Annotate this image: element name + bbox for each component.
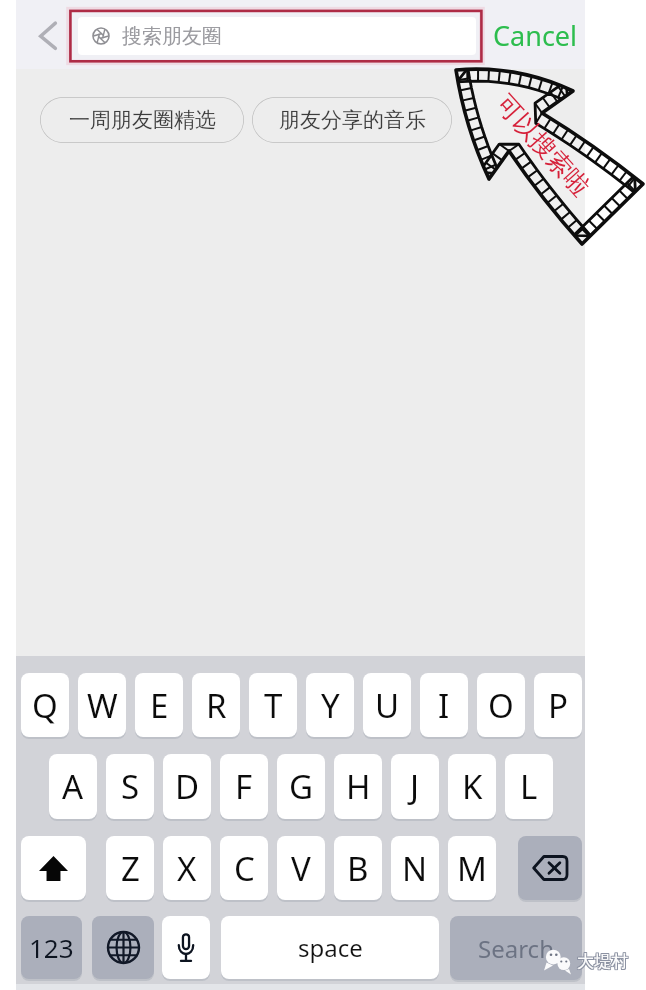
button[interactable]: T [249, 673, 297, 737]
staticText: space [298, 931, 363, 964]
button[interactable]: B [334, 836, 382, 900]
button[interactable]: G [277, 754, 325, 819]
staticText: U [375, 683, 400, 728]
staticText: 大堤村 [576, 952, 627, 973]
staticText: 朋友分享的音乐 [279, 107, 426, 133]
staticText: E [150, 683, 169, 728]
staticText: M [457, 846, 487, 891]
button[interactable]: I [420, 673, 468, 737]
staticText: V [291, 846, 311, 891]
button[interactable]: Z [106, 836, 154, 900]
button[interactable]: 搜索朋友圈 [78, 17, 476, 55]
staticText: J [410, 764, 420, 809]
staticText: S [121, 764, 140, 809]
staticText: D [175, 764, 200, 809]
staticText: I [438, 683, 450, 728]
staticText: O [488, 683, 514, 728]
staticText: Y [321, 683, 340, 728]
staticText: 大堤村 [577, 952, 628, 973]
staticText: 大堤村 [578, 951, 629, 972]
button[interactable]: X [163, 836, 211, 900]
staticText: F [235, 764, 253, 809]
staticText: H [346, 764, 371, 809]
staticText: R [206, 683, 227, 728]
staticText: 大堤村 [577, 950, 628, 971]
staticText: N [402, 846, 428, 891]
button[interactable]: D [163, 754, 211, 819]
button[interactable]: space [221, 916, 439, 979]
staticText: C [234, 846, 255, 891]
button[interactable]: M [448, 836, 496, 900]
staticText: A [62, 764, 84, 809]
button[interactable]: U [363, 673, 411, 737]
button[interactable]: Q [21, 673, 69, 737]
button[interactable]: K [448, 754, 496, 819]
button[interactable]: H [334, 754, 382, 819]
button[interactable]: J [391, 754, 439, 819]
staticText: W [87, 683, 118, 728]
staticText: 搜索朋友圈 [122, 24, 222, 49]
staticText: K [462, 764, 483, 809]
button[interactable]: Y [306, 673, 354, 737]
staticText: L [520, 764, 538, 809]
button[interactable]: Backspace [518, 836, 582, 900]
staticText: Cancel [493, 17, 578, 54]
staticText: Z [121, 846, 140, 891]
staticText: P [548, 683, 568, 728]
staticText: B [347, 846, 369, 891]
button[interactable]: E [135, 673, 183, 737]
staticText: 123 [29, 930, 74, 965]
button[interactable]: S [106, 754, 154, 819]
button[interactable]: N [391, 836, 439, 900]
button[interactable]: W [78, 673, 126, 737]
staticText: 大堤村 [576, 951, 627, 972]
staticText: G [289, 764, 314, 809]
button[interactable]: Back [24, 4, 76, 64]
button[interactable]: Search [450, 916, 582, 980]
button[interactable]: 一周朋友圈精选 [40, 97, 244, 143]
staticText: 大堤村 [577, 951, 628, 972]
button[interactable]: Change keyboard [92, 916, 154, 979]
staticText: Search [478, 932, 554, 965]
button[interactable]: C [220, 836, 268, 900]
staticText: 大堤村 [578, 950, 629, 971]
button[interactable] [21, 836, 86, 900]
staticText: X [177, 846, 197, 891]
button[interactable]: Cancel [493, 11, 578, 59]
staticText: Q [32, 683, 58, 728]
button[interactable]: 123 [21, 916, 82, 979]
button[interactable]: 朋友分享的音乐 [252, 97, 452, 143]
button[interactable]: O [477, 673, 525, 737]
staticText: 大堤村 [576, 950, 627, 971]
button[interactable]: A [49, 754, 97, 819]
staticText: 可以搜索啦 [464, 61, 621, 230]
staticText: T [264, 683, 283, 728]
button[interactable]: L [505, 754, 553, 819]
button[interactable]: R [192, 673, 240, 737]
button[interactable]: V [277, 836, 325, 900]
button[interactable]: F [220, 754, 268, 819]
button[interactable]: P [534, 673, 582, 737]
button[interactable]: Voice input [162, 916, 210, 979]
staticText: 一周朋友圈精选 [69, 107, 216, 133]
staticText: 大堤村 [578, 952, 629, 973]
